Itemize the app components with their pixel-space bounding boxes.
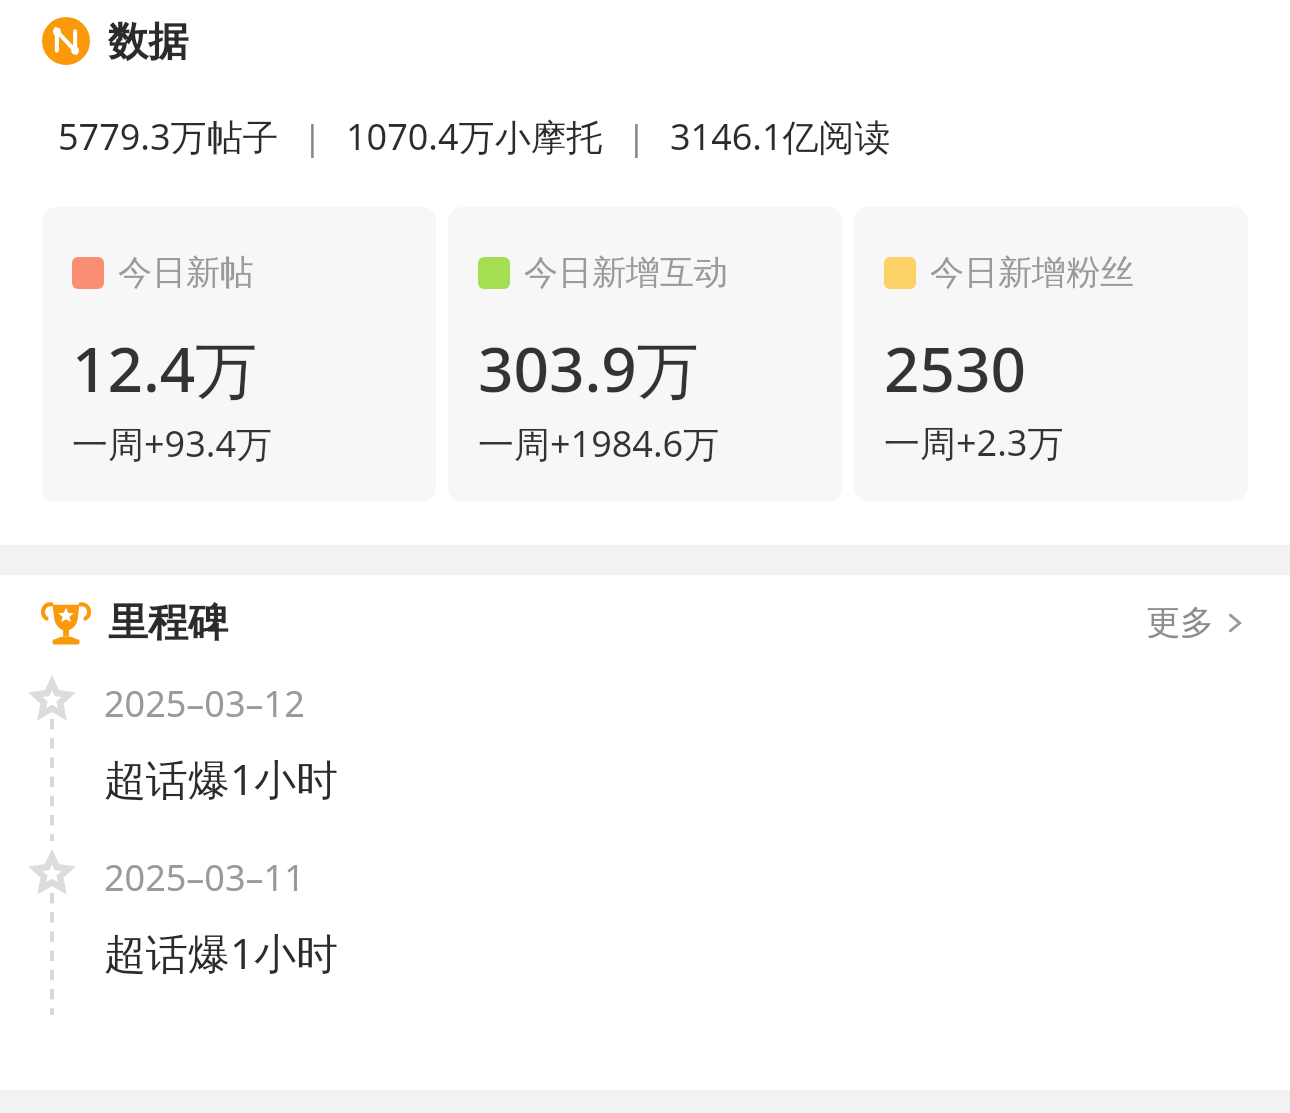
button[interactable]: 今日新增互动 [448,207,842,502]
staticText: 超话爆1小时 [104,750,339,807]
staticText: 2530 [884,326,1026,410]
staticText: 303.9万 [478,326,699,411]
button[interactable]: 数据 [42,16,1290,66]
staticText: 一周+2.3万 [884,418,1064,467]
staticText: 今日新增粉丝 [930,251,1134,294]
button[interactable]: 今日新增粉丝 [854,207,1248,501]
staticText: 2025–03–12 [104,679,305,728]
staticText: 里程碑 [108,597,228,647]
button[interactable]: 更多 [1146,601,1248,644]
staticText: 3146.1亿阅读 [670,112,891,161]
staticText: 2025–03–11 [104,853,305,902]
other: 数据 [42,17,90,65]
staticText: 一周+1984.6万 [478,419,720,468]
button[interactable]: 今日新帖 [42,207,436,502]
staticText: 1070.4万小摩托 [346,112,603,161]
staticText: 数据 [108,16,188,66]
other: 里程碑 [42,598,90,646]
staticText: 更多 [1146,601,1214,644]
staticText: 12.4万 [72,326,258,411]
staticText: 超话爆1小时 [104,924,339,981]
staticText: | [627,114,646,160]
staticText: 今日新帖 [118,251,254,294]
button[interactable]: 2025–03–11 [0,847,1290,1021]
staticText: 一周+93.4万 [72,419,273,468]
staticText: | [303,114,322,160]
staticText: 5779.3万帖子 [58,112,279,161]
button[interactable]: 2025–03–12 [0,673,1290,847]
staticText: 今日新增互动 [524,251,728,294]
